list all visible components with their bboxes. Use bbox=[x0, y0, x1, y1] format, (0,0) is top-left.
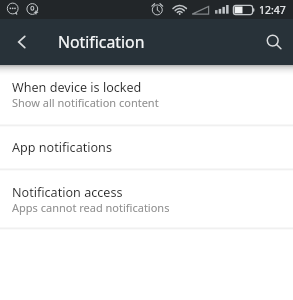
staticText: App notifications bbox=[12, 139, 112, 156]
staticText: Notification access bbox=[12, 184, 123, 201]
button[interactable]: Notification access bbox=[0, 170, 293, 229]
button[interactable]: When device is locked bbox=[0, 65, 293, 125]
staticText: When device is locked bbox=[12, 79, 142, 96]
staticText: 12:47 bbox=[259, 3, 286, 17]
button[interactable]: App notifications bbox=[0, 126, 293, 169]
staticText: Notification bbox=[58, 31, 145, 53]
button[interactable]: Back bbox=[0, 19, 42, 65]
staticText: Show all notification content bbox=[12, 95, 159, 110]
button[interactable]: Search bbox=[247, 19, 293, 65]
staticText: Apps cannot read notifications bbox=[12, 200, 170, 215]
